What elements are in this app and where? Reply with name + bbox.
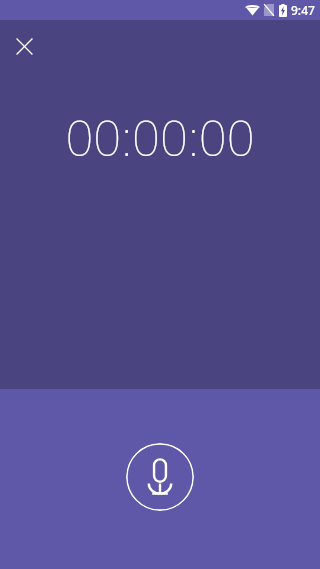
staticText: 9:47	[291, 2, 315, 18]
button[interactable]: Close	[4, 26, 44, 66]
staticText: 00:00:00	[0, 104, 320, 171]
button[interactable]: Record voice	[126, 443, 194, 511]
